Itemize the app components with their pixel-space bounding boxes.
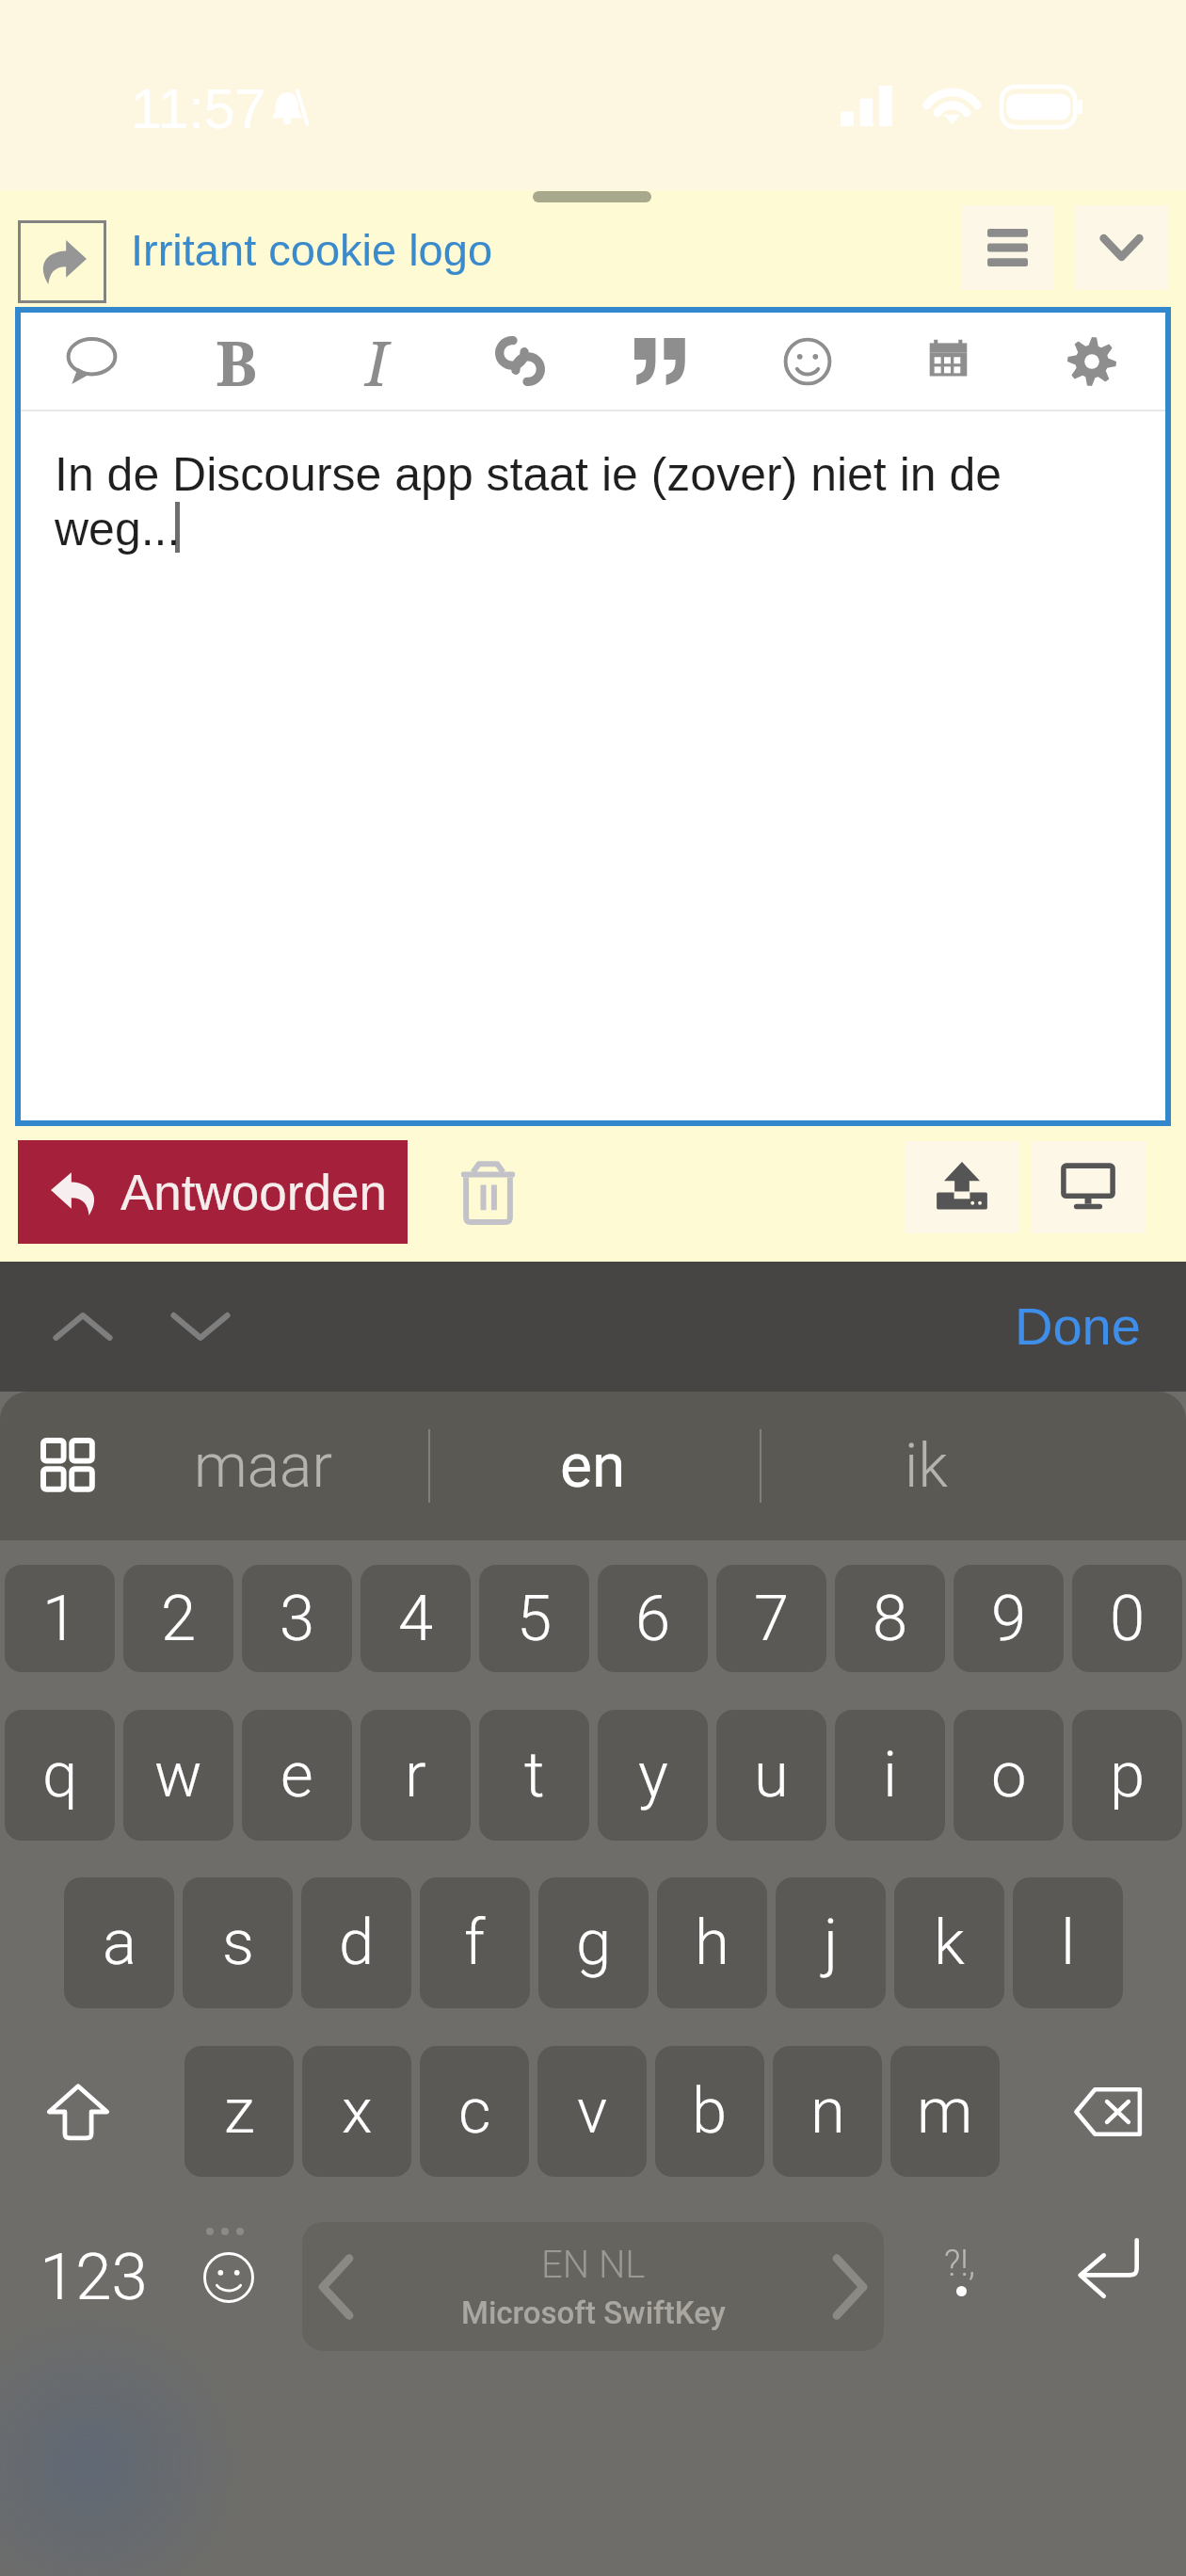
staticText: 4 bbox=[398, 1582, 434, 1656]
button[interactable]: u bbox=[716, 1710, 826, 1841]
button[interactable]: 3 bbox=[242, 1565, 352, 1672]
button[interactable]: h bbox=[657, 1877, 767, 2008]
staticText: o bbox=[991, 1738, 1027, 1812]
staticText: b bbox=[692, 2074, 728, 2149]
button[interactable]: w bbox=[123, 1710, 233, 1841]
button[interactable]: Preview bbox=[1031, 1141, 1146, 1233]
button[interactable]: f bbox=[420, 1877, 530, 2008]
button[interactable]: ?!, bbox=[894, 2216, 1017, 2353]
button[interactable]: Blockquote bbox=[604, 313, 717, 410]
button[interactable]: ik bbox=[794, 1392, 1058, 1540]
staticText: EN NL bbox=[541, 2243, 646, 2287]
staticText: q bbox=[42, 1738, 78, 1812]
staticText: 1 bbox=[42, 1582, 78, 1656]
button[interactable]: Next field bbox=[168, 1294, 233, 1360]
button[interactable]: Emoji keyboard bbox=[173, 2216, 292, 2367]
staticText: 2 bbox=[161, 1582, 197, 1656]
button[interactable]: 9 bbox=[954, 1565, 1064, 1672]
staticText: d bbox=[339, 1906, 375, 1980]
button[interactable]: Shift bbox=[13, 2046, 143, 2177]
button[interactable]: Backspace bbox=[1042, 2046, 1174, 2177]
staticText: g bbox=[576, 1906, 612, 1980]
button[interactable]: Options bbox=[1035, 313, 1148, 410]
staticText: e bbox=[280, 1738, 313, 1812]
button[interactable]: e bbox=[242, 1710, 352, 1841]
staticText: w bbox=[154, 1738, 202, 1812]
staticText: r bbox=[405, 1738, 426, 1812]
staticText: 11:57 bbox=[131, 78, 266, 140]
button[interactable]: d bbox=[301, 1877, 411, 2008]
button[interactable]: c bbox=[420, 2046, 529, 2177]
staticText: k bbox=[934, 1906, 965, 1980]
button[interactable]: 2 bbox=[123, 1565, 233, 1672]
button[interactable]: Calendar bbox=[891, 313, 1004, 410]
button[interactable]: t bbox=[479, 1710, 589, 1841]
staticText: ik bbox=[905, 1431, 948, 1502]
button[interactable]: Collapse composer bbox=[1075, 205, 1168, 290]
button[interactable]: v bbox=[537, 2046, 647, 2177]
staticText: p bbox=[1110, 1738, 1146, 1812]
staticText: Irritant cookie logo bbox=[131, 225, 493, 275]
button[interactable]: Enter bbox=[1035, 2216, 1181, 2353]
button[interactable]: Italic bbox=[321, 313, 434, 410]
staticText: Microsoft SwiftKey bbox=[461, 2294, 726, 2331]
button[interactable]: 6 bbox=[598, 1565, 708, 1672]
staticText: c bbox=[458, 2074, 491, 2149]
staticText: In de Discourse app staat ie (zover) nie… bbox=[55, 448, 1002, 555]
staticText: Done bbox=[1015, 1296, 1141, 1356]
button[interactable]: 5 bbox=[479, 1565, 589, 1672]
button[interactable]: r bbox=[361, 1710, 471, 1841]
button[interactable]: n bbox=[773, 2046, 882, 2177]
button[interactable]: Keyboard toolbar bbox=[13, 1392, 124, 1540]
button[interactable]: l bbox=[1013, 1877, 1123, 2008]
button[interactable]: x bbox=[302, 2046, 411, 2177]
button[interactable]: q bbox=[5, 1710, 115, 1841]
staticText: I bbox=[365, 319, 389, 404]
button[interactable]: en bbox=[461, 1392, 725, 1540]
button[interactable]: b bbox=[655, 2046, 764, 2177]
button[interactable]: Quote reply bbox=[35, 313, 148, 410]
button[interactable]: Done bbox=[1000, 1282, 1156, 1369]
button[interactable]: o bbox=[954, 1710, 1064, 1841]
button[interactable]: Link bbox=[463, 313, 576, 410]
staticText: z bbox=[224, 2074, 255, 2149]
staticText: 6 bbox=[635, 1582, 671, 1656]
button[interactable]: Space bbox=[302, 2222, 884, 2351]
button[interactable]: j bbox=[776, 1877, 886, 2008]
button[interactable]: g bbox=[538, 1877, 649, 2008]
staticText: B bbox=[216, 319, 258, 404]
button[interactable]: Menu bbox=[961, 205, 1054, 290]
staticText: f bbox=[464, 1906, 486, 1980]
button[interactable]: y bbox=[598, 1710, 708, 1841]
button[interactable]: 1 bbox=[5, 1565, 115, 1672]
button[interactable]: s bbox=[183, 1877, 293, 2008]
button[interactable]: 7 bbox=[716, 1565, 826, 1672]
button[interactable]: p bbox=[1072, 1710, 1182, 1841]
staticText: Antwoorden bbox=[120, 1165, 387, 1220]
button[interactable]: Antwoorden bbox=[18, 1140, 408, 1244]
button[interactable]: Bold bbox=[180, 313, 293, 410]
button[interactable]: Reply to post bbox=[18, 220, 106, 303]
button[interactable]: k bbox=[894, 1877, 1004, 2008]
staticText: i bbox=[883, 1738, 898, 1812]
staticText: t bbox=[524, 1738, 545, 1812]
button[interactable]: maar bbox=[131, 1392, 394, 1540]
staticText: 5 bbox=[517, 1582, 553, 1656]
button[interactable]: m bbox=[890, 2046, 1000, 2177]
button[interactable]: 0 bbox=[1072, 1565, 1182, 1672]
button[interactable]: 123 bbox=[13, 2201, 173, 2352]
staticText: j bbox=[824, 1906, 839, 1980]
button[interactable]: i bbox=[835, 1710, 945, 1841]
button[interactable]: z bbox=[184, 2046, 294, 2177]
staticText: 0 bbox=[1110, 1582, 1146, 1656]
button[interactable]: 4 bbox=[361, 1565, 471, 1672]
button[interactable]: 8 bbox=[835, 1565, 945, 1672]
staticText: x bbox=[342, 2074, 373, 2149]
button[interactable]: Emoji bbox=[751, 313, 864, 410]
staticText: maar bbox=[194, 1431, 332, 1502]
button[interactable]: Previous field bbox=[50, 1294, 116, 1360]
button[interactable]: Upload bbox=[905, 1141, 1019, 1233]
button[interactable]: Delete draft bbox=[442, 1147, 533, 1237]
staticText: l bbox=[1061, 1906, 1076, 1980]
button[interactable]: a bbox=[64, 1877, 174, 2008]
